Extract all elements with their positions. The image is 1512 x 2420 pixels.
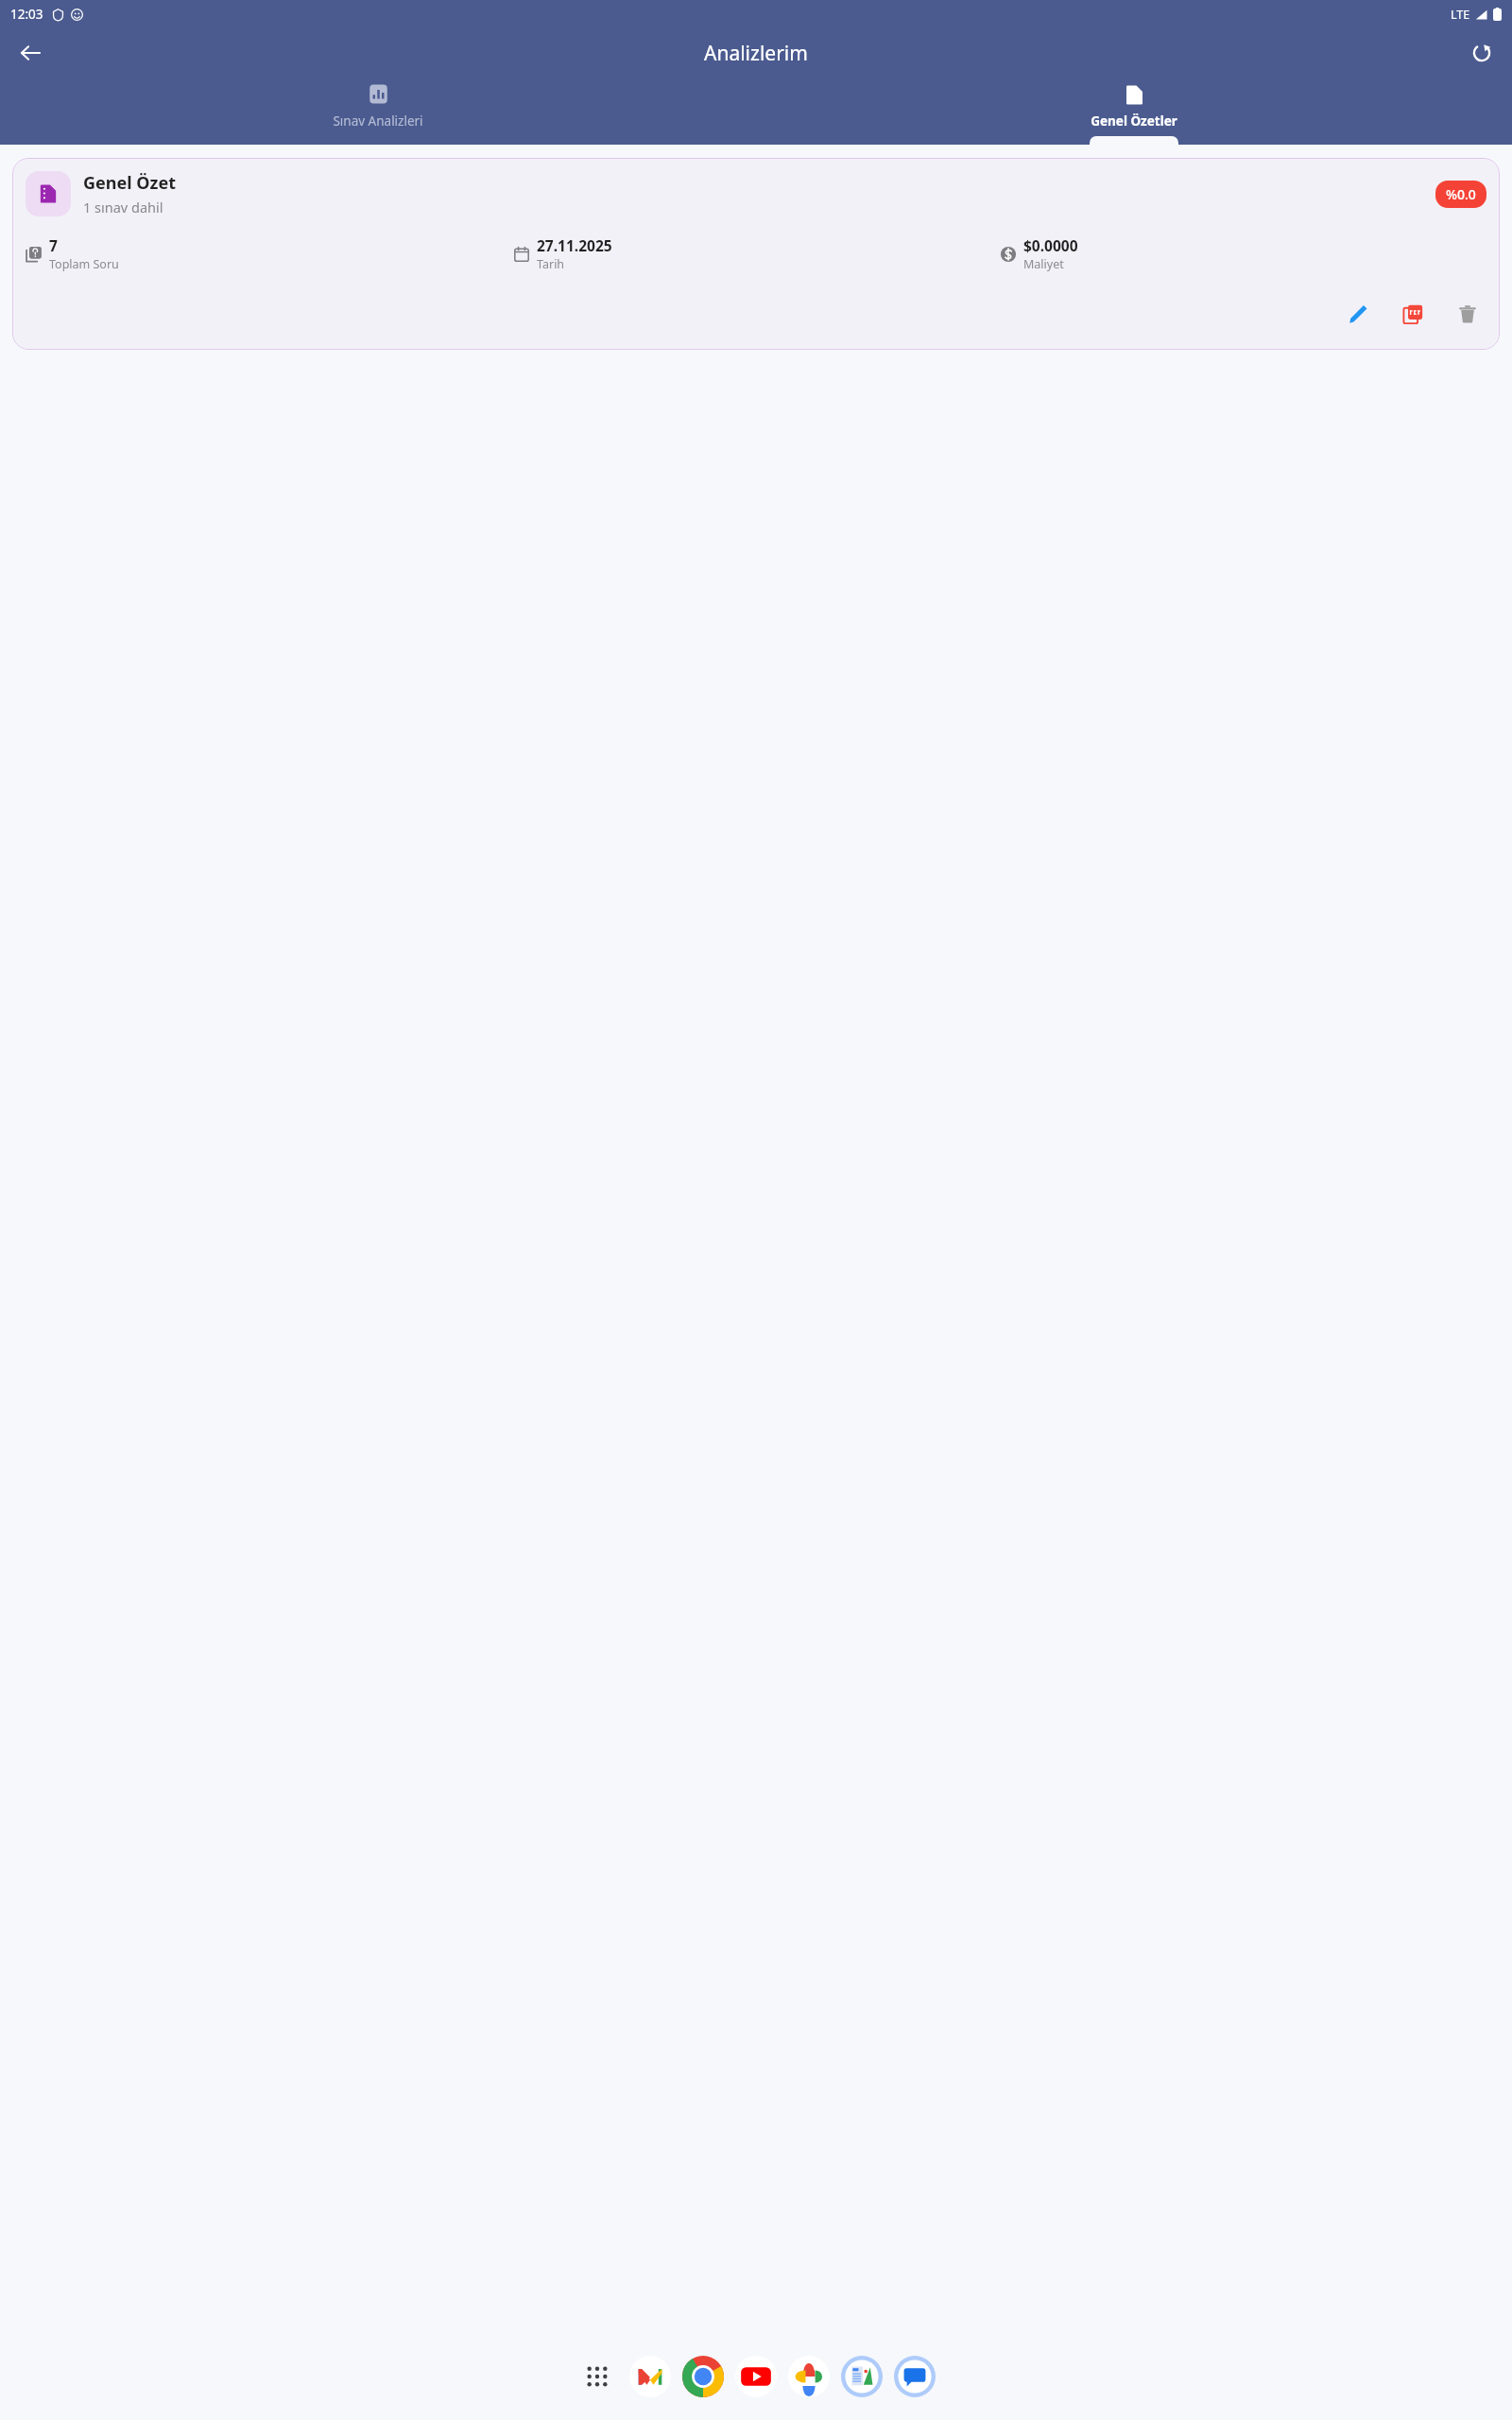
button[interactable]: All apps (571, 2350, 624, 2403)
staticText: Analizlerim (704, 40, 808, 67)
staticText: LTE (1451, 7, 1470, 23)
staticText: Toplam Soru (49, 256, 119, 272)
button[interactable]: Chrome (677, 2350, 730, 2403)
button[interactable]: Back (8, 30, 53, 76)
staticText: 1 sınav dahil (83, 198, 163, 216)
button[interactable]: Photos (782, 2350, 835, 2403)
staticText: 27.11.2025 (537, 235, 612, 255)
button[interactable]: Delete (1449, 295, 1486, 333)
staticText: 7 (49, 235, 58, 255)
button[interactable]: Gmail (624, 2350, 677, 2403)
staticText: %0.0 (1446, 185, 1476, 203)
button[interactable]: Genel Özet (12, 158, 1500, 350)
staticText: Maliyet (1023, 256, 1064, 272)
staticText: Sınav Analizleri (333, 112, 423, 130)
button[interactable]: Refresh (1459, 30, 1504, 76)
button[interactable]: YouTube (730, 2350, 782, 2403)
button[interactable]: Messages (888, 2350, 941, 2403)
button[interactable]: Sınav Analizleri (0, 78, 756, 145)
button[interactable]: Edit (1339, 295, 1377, 333)
staticText: Genel Özetler (1091, 112, 1177, 130)
staticText: Tarih (537, 256, 565, 272)
staticText: 12:03 (10, 6, 43, 23)
staticText: Genel Özet (83, 171, 176, 195)
button[interactable]: Export PDF (1394, 295, 1432, 333)
button[interactable]: Drive scan (835, 2350, 888, 2403)
button[interactable]: Genel Özetler (756, 78, 1512, 145)
staticText: $0.0000 (1023, 235, 1078, 255)
